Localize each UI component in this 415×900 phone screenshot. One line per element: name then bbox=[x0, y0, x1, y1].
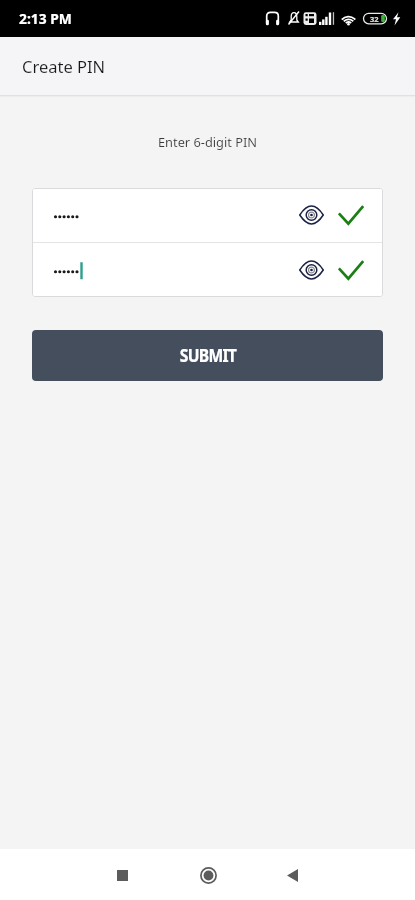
staticText: Create PIN bbox=[22, 55, 106, 77]
button[interactable]: Back bbox=[269, 852, 315, 898]
button[interactable]: Show PIN bbox=[291, 195, 331, 235]
button[interactable]: Home bbox=[185, 852, 231, 898]
staticText: 32 bbox=[370, 14, 379, 24]
button[interactable]: Show PIN bbox=[291, 250, 331, 290]
staticText: Enter 6-digit PIN bbox=[158, 133, 258, 150]
button[interactable]: SUBMIT bbox=[32, 330, 383, 381]
button[interactable]: Recents bbox=[99, 852, 145, 898]
staticText: 2:13 PM bbox=[19, 9, 72, 28]
button[interactable]: Show PIN bbox=[32, 243, 383, 297]
button[interactable]: Show PIN bbox=[32, 188, 383, 242]
staticText: SUBMIT bbox=[179, 344, 236, 367]
